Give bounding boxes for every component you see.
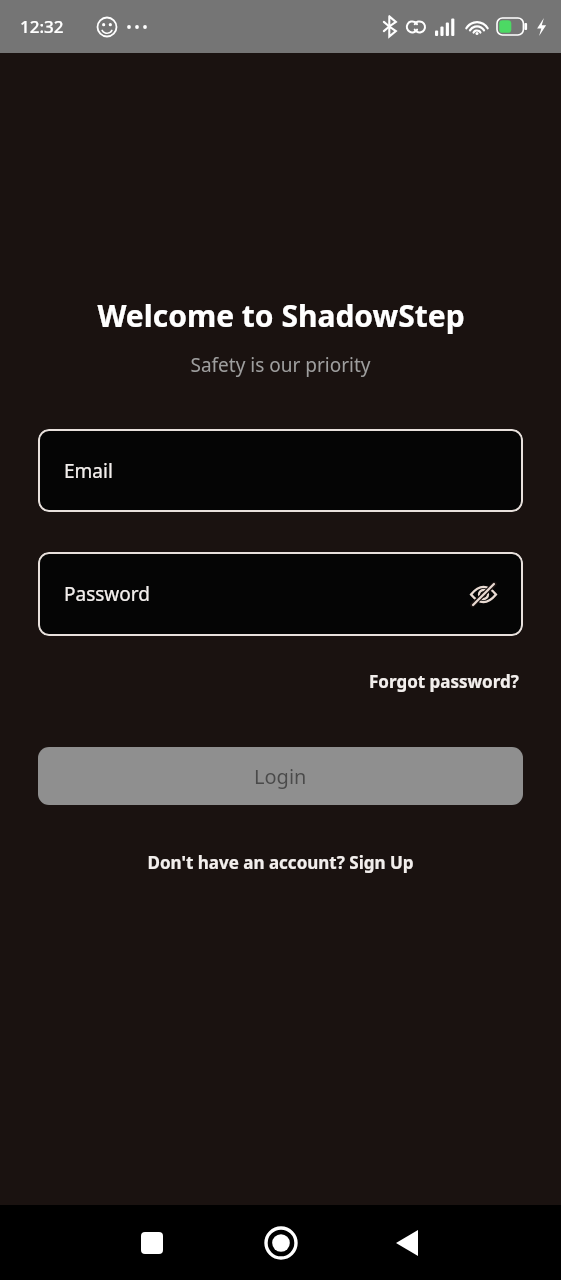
staticText: Forgot password? <box>369 670 519 693</box>
button[interactable]: Home <box>253 1215 309 1271</box>
button[interactable]: Email <box>38 429 523 512</box>
button[interactable]: Password <box>38 552 523 636</box>
button[interactable]: Forgot password? <box>365 667 523 696</box>
staticText: Login <box>254 763 307 790</box>
staticText: Safety is our priority <box>190 352 371 378</box>
button[interactable]: Back <box>381 1217 433 1269</box>
button[interactable]: Login <box>38 747 523 805</box>
button[interactable]: Don't have an account? Sign Up <box>141 848 420 877</box>
staticText: 12:32 <box>20 15 64 38</box>
staticText: Password <box>64 581 150 607</box>
staticText: Don't have an account? Sign Up <box>147 851 414 874</box>
staticText: Welcome to ShadowStep <box>97 295 465 336</box>
staticText: Email <box>64 458 113 484</box>
button[interactable]: Toggle password visibility <box>463 574 503 614</box>
button[interactable]: Recent apps <box>126 1217 178 1269</box>
